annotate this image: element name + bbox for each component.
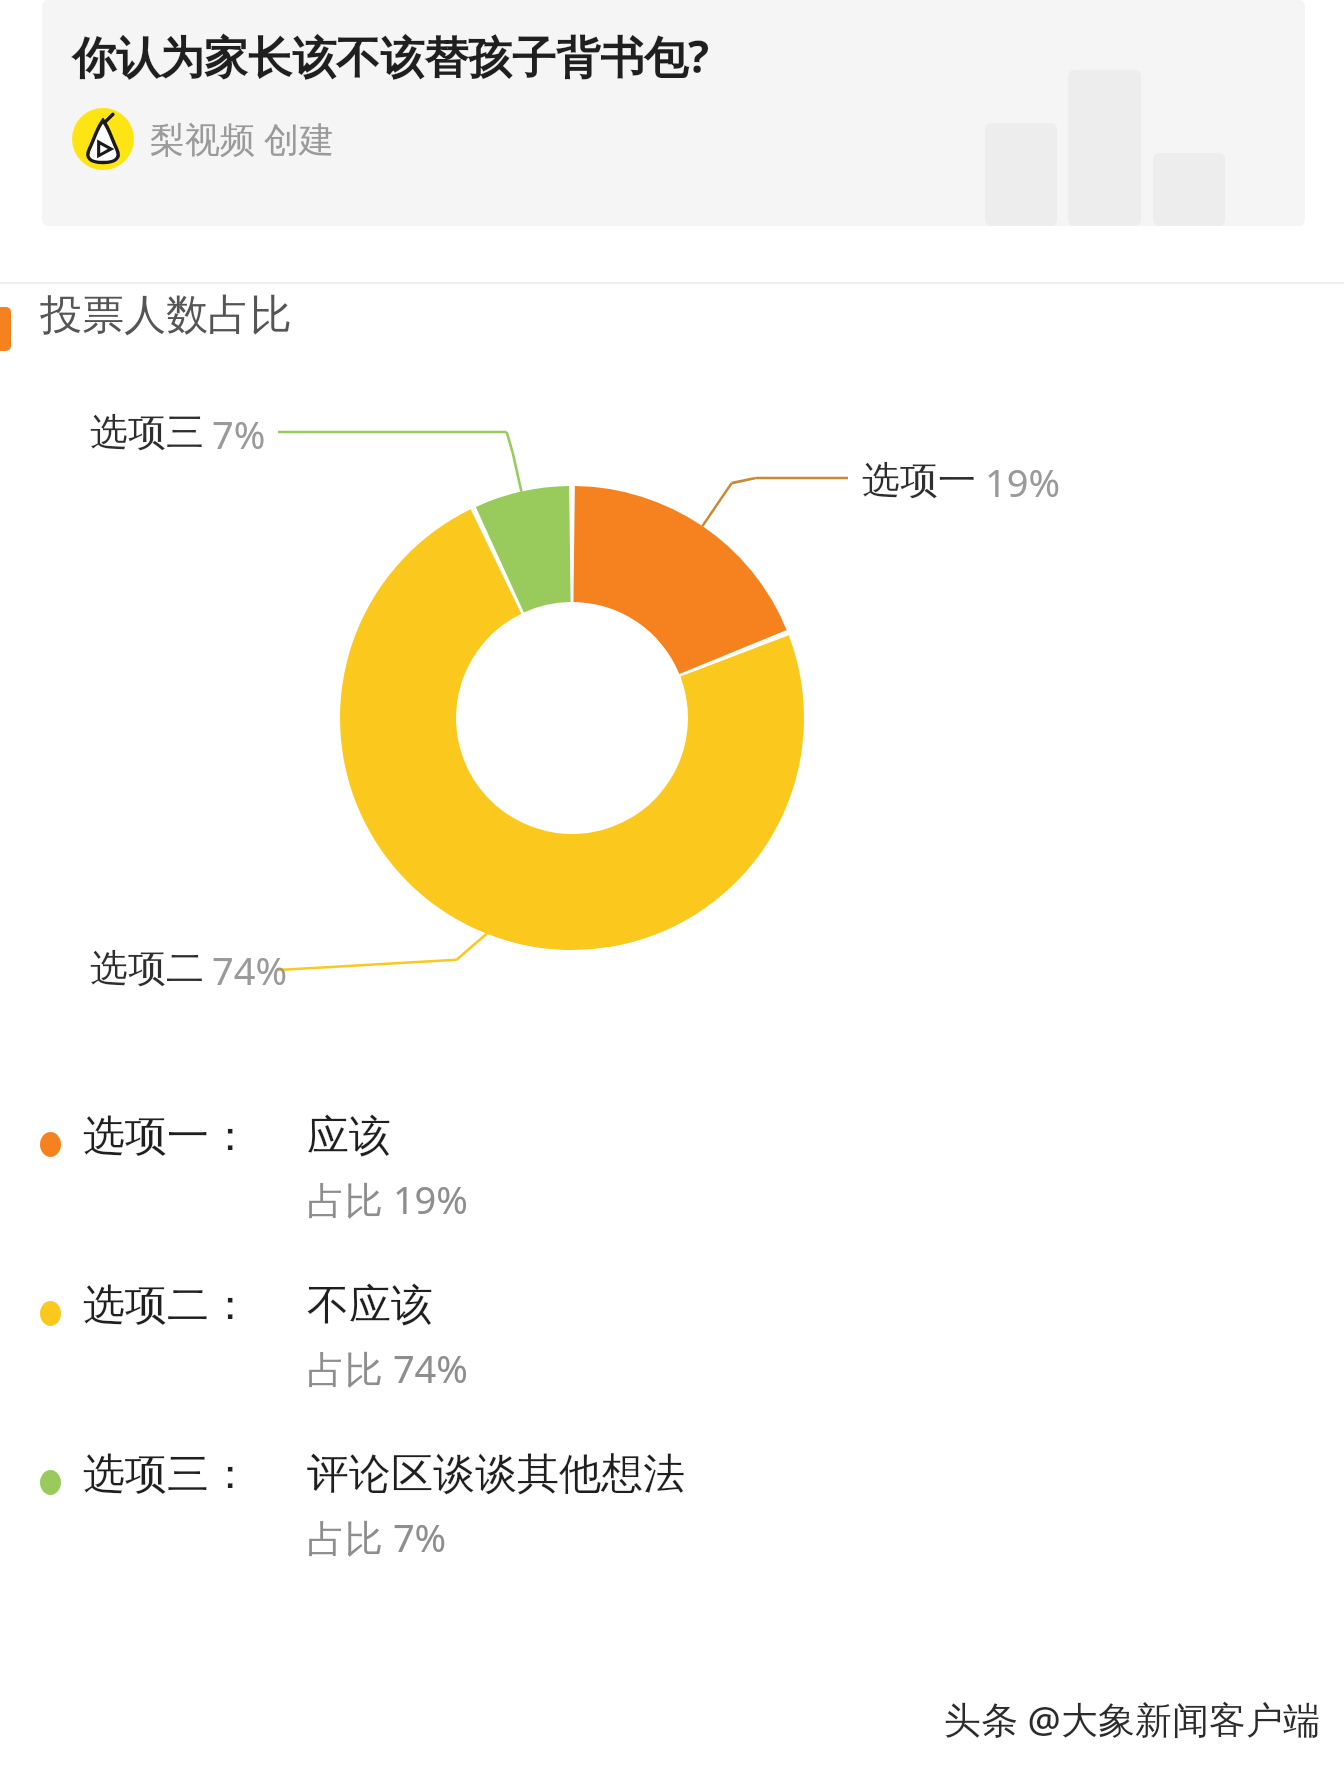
- staticText: 应该: [307, 1110, 391, 1163]
- staticText: 选项一: [862, 456, 976, 504]
- staticText: 头条 @大象新闻客户端: [944, 1693, 1320, 1744]
- staticText: 74%: [212, 944, 288, 996]
- staticText: 占比 74%: [307, 1342, 468, 1394]
- staticText: 选项三：: [83, 1448, 251, 1501]
- staticText: 选项三: [90, 408, 204, 456]
- staticText: 选项二：: [83, 1279, 251, 1332]
- staticText: 梨视频 创建: [150, 115, 335, 163]
- staticText: 你认为家长该不该替孩子背书包?: [72, 26, 709, 86]
- staticText: 19%: [985, 456, 1061, 508]
- button[interactable]: 你认为家长该不该替孩子背书包?: [42, 0, 1305, 226]
- staticText: 评论区谈谈其他想法: [307, 1448, 685, 1501]
- button[interactable]: 选项一：: [0, 1110, 1344, 1225]
- button[interactable]: 选项二：: [0, 1279, 1344, 1394]
- staticText: 不应该: [307, 1279, 433, 1332]
- button[interactable]: 选项三：: [0, 1448, 1344, 1563]
- staticText: 占比 7%: [307, 1511, 447, 1563]
- staticText: 选项一：: [83, 1110, 251, 1163]
- staticText: 占比 19%: [307, 1173, 468, 1225]
- staticText: 选项二: [90, 944, 204, 992]
- staticText: 7%: [212, 408, 266, 460]
- staticText: 投票人数占比: [40, 289, 292, 342]
